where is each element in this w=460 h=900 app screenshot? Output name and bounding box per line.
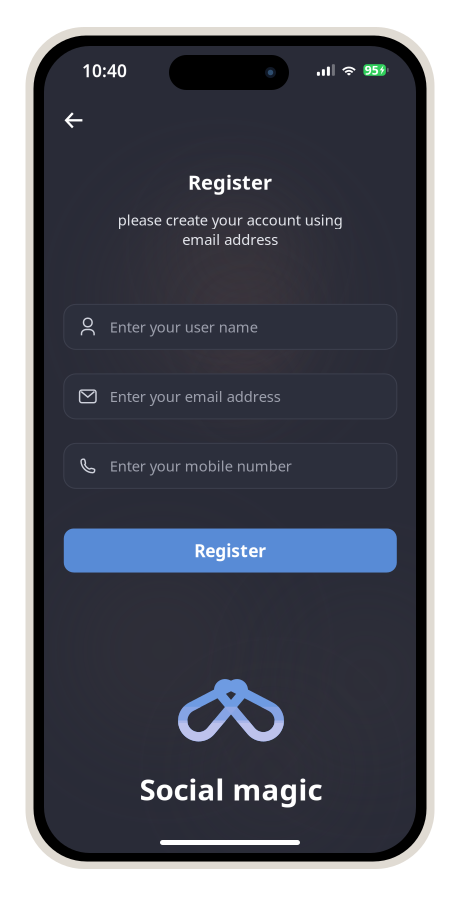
button[interactable]: Back [51, 99, 97, 141]
staticText: Social magic [139, 769, 322, 808]
button[interactable]: Register [64, 528, 397, 572]
staticText: Enter your email address [110, 387, 281, 406]
staticText: Register [194, 539, 266, 562]
button[interactable]: Enter your email address [64, 374, 397, 419]
staticText: 95 [365, 62, 379, 78]
staticText: please create your account using email a… [117, 210, 342, 249]
staticText: Register [188, 169, 272, 195]
button[interactable]: Enter your user name [64, 304, 397, 349]
staticText: 10:40 [82, 59, 127, 82]
staticText: Enter your mobile number [110, 456, 292, 476]
button[interactable]: Enter your mobile number [64, 443, 397, 488]
staticText: Enter your user name [110, 317, 258, 337]
